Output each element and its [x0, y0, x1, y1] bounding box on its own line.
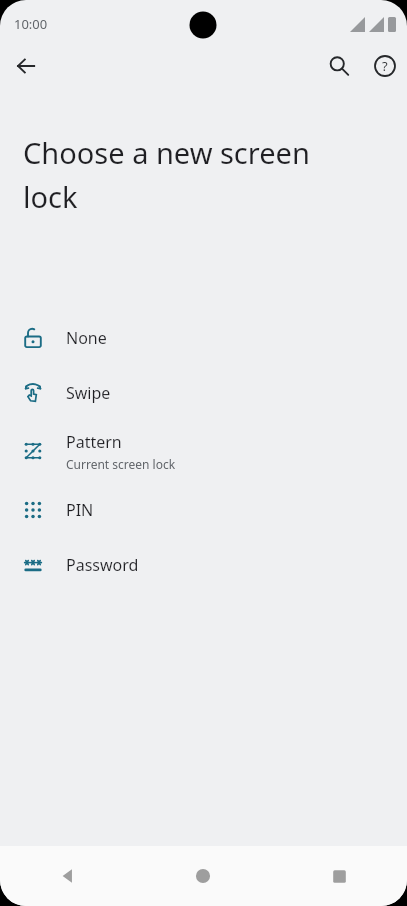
button[interactable]: Pattern — [0, 420, 407, 482]
button[interactable]: None — [0, 310, 407, 365]
staticText: None — [66, 327, 107, 349]
staticText: PIN — [66, 499, 94, 521]
button[interactable]: PIN — [0, 482, 407, 537]
button[interactable]: Search — [319, 46, 359, 86]
staticText: Choose a new screen lock — [23, 133, 367, 216]
staticText: ? — [382, 57, 388, 75]
button[interactable]: Home — [135, 846, 271, 906]
button[interactable]: Password — [0, 537, 407, 592]
button[interactable]: Help — [365, 46, 405, 86]
staticText: Current screen lock — [66, 456, 176, 472]
staticText: Password — [66, 554, 139, 576]
button[interactable]: Swipe — [0, 365, 407, 420]
button[interactable]: Back — [0, 846, 135, 906]
staticText: 10:00 — [14, 15, 48, 33]
staticText: Swipe — [66, 382, 111, 404]
button[interactable]: Recent apps — [271, 846, 407, 906]
staticText: Pattern — [66, 431, 122, 453]
button[interactable]: Back — [6, 46, 46, 86]
